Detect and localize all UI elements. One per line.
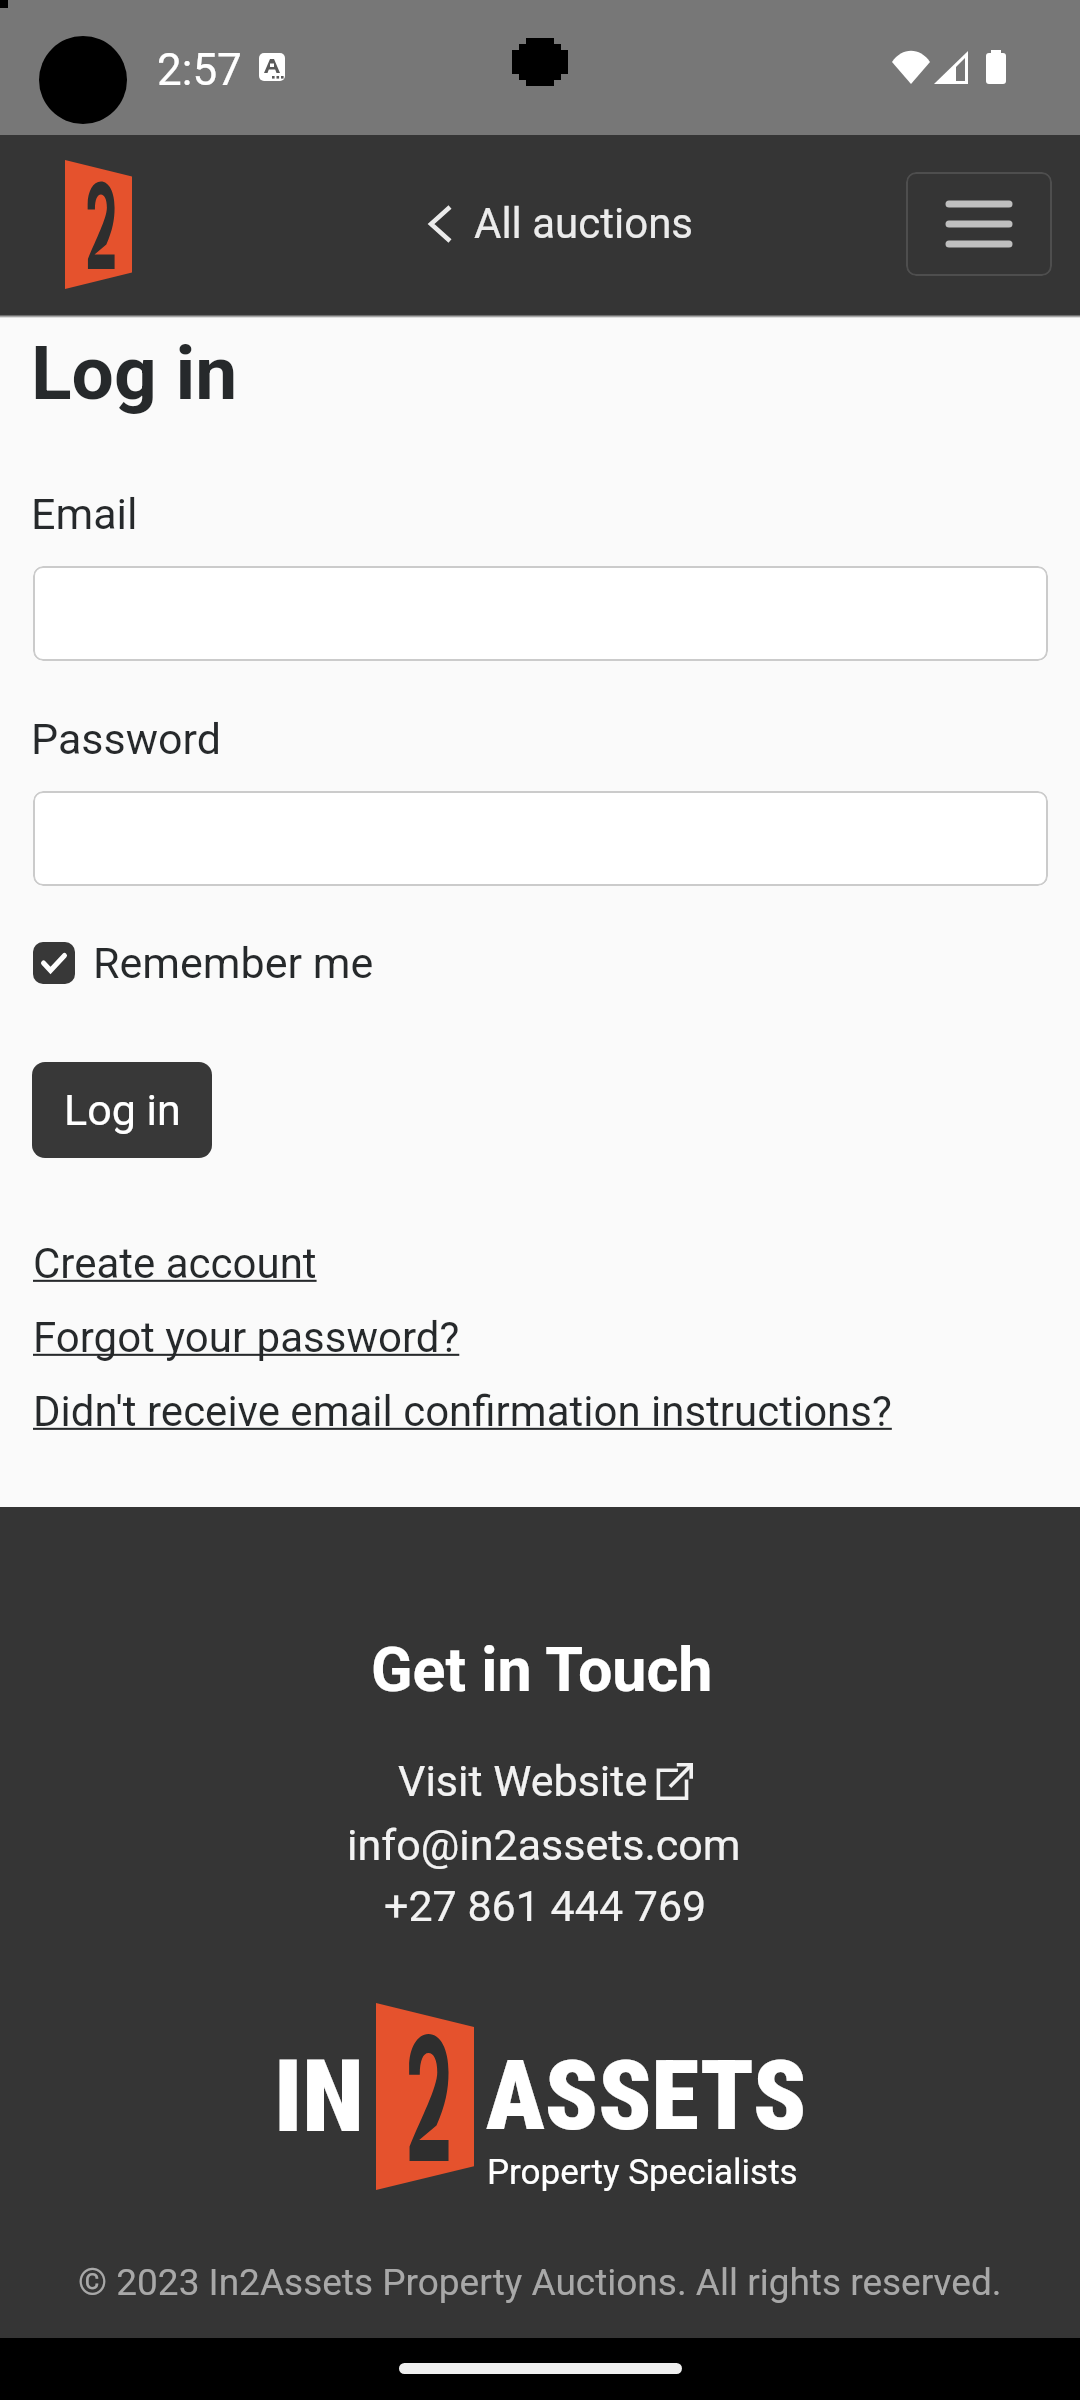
staticText: Create account: [33, 1239, 317, 1288]
staticText: Visit Website: [398, 1756, 648, 1806]
staticText: Get in Touch: [371, 1634, 713, 1705]
staticText: © 2023 In2Assets Property Auctions. All …: [78, 2261, 1002, 2304]
button[interactable]: Log in: [32, 1062, 212, 1158]
button[interactable]: Open navigation menu: [906, 172, 1052, 276]
staticText: ASSETS: [486, 2039, 807, 2153]
staticText: All auctions: [474, 199, 694, 248]
staticText: Password: [31, 714, 221, 764]
staticText: Forgot your password?: [33, 1313, 460, 1362]
staticText: +27 861 444 769: [384, 1881, 707, 1931]
staticText: Remember me: [93, 938, 374, 988]
staticText: Property Specialists: [487, 2152, 798, 2193]
staticText: Log in: [64, 1085, 181, 1135]
button[interactable]: Visit Website: [398, 1756, 693, 1806]
staticText: info@in2assets.com: [347, 1820, 741, 1870]
staticText: Didn't receive email confirmation instru…: [33, 1387, 892, 1436]
button[interactable]: In2Assets home: [65, 160, 132, 289]
staticText: Email: [31, 489, 138, 539]
button[interactable]: +27 861 444 769: [384, 1881, 707, 1931]
button[interactable]: All auctions: [428, 199, 694, 248]
button[interactable]: info@in2assets.com: [347, 1820, 741, 1870]
button[interactable]: Password field: [33, 791, 1048, 886]
staticText: 2:57: [157, 44, 242, 96]
button[interactable]: Forgot your password?: [33, 1313, 460, 1362]
button[interactable]: Didn't receive email confirmation instru…: [33, 1387, 892, 1436]
button[interactable]: Remember me: [33, 930, 374, 996]
button[interactable]: Create account: [33, 1239, 317, 1288]
button[interactable]: Email field: [33, 566, 1048, 661]
staticText: IN: [274, 2037, 364, 2155]
staticText: Log in: [31, 329, 238, 417]
